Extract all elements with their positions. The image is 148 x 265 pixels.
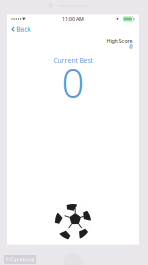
staticText: 11:00 AM (62, 15, 84, 23)
staticText: © Facebook (6, 256, 35, 263)
staticText: Current Best (53, 56, 92, 65)
staticText: 0 (129, 43, 132, 50)
button[interactable]: Back (7, 22, 36, 36)
staticText: Back (16, 25, 31, 34)
staticText: High Score (106, 37, 132, 44)
staticText: 0 (61, 56, 84, 109)
